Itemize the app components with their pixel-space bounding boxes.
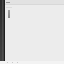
button[interactable] (5, 6, 64, 8)
button[interactable]: Navigation panel (0, 0, 5, 64)
button[interactable] (5, 0, 64, 4)
button[interactable]: Tab 2 (15, 61, 20, 64)
button[interactable]: Tab 1 (10, 61, 15, 64)
button[interactable]: Tab 0 (5, 61, 10, 64)
button[interactable] (8, 10, 10, 18)
